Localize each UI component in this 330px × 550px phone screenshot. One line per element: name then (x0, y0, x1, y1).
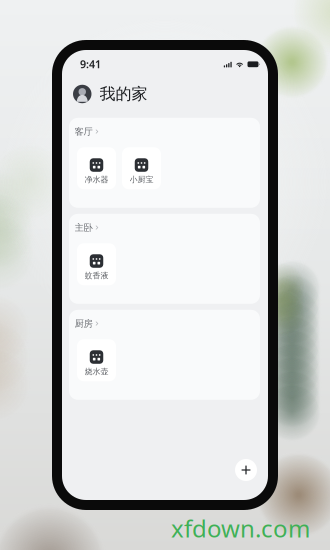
staticText: 小厨宝 (129, 175, 153, 185)
button[interactable]: Add device (235, 459, 257, 481)
staticText: 客厅 (74, 126, 92, 137)
button[interactable]: 蚊香液 (77, 243, 116, 285)
button[interactable]: 主卧 (69, 214, 102, 237)
button[interactable]: 客厅 (69, 118, 102, 141)
button[interactable]: 厨房 (69, 310, 102, 333)
button[interactable]: 小厨宝 (122, 147, 161, 189)
staticText: 净水器 (84, 175, 108, 185)
staticText: 烧水壶 (84, 367, 108, 377)
button[interactable]: 净水器 (77, 147, 116, 189)
staticText: 我的家 (99, 84, 147, 104)
staticText: xfdown.com (171, 512, 310, 544)
button[interactable]: 我的家 (62, 71, 147, 118)
staticText: 9:41 (80, 57, 101, 71)
staticText: 主卧 (74, 222, 92, 233)
staticText: 蚊香液 (84, 271, 108, 281)
button[interactable]: 烧水壶 (77, 339, 116, 381)
staticText: 厨房 (74, 318, 92, 329)
